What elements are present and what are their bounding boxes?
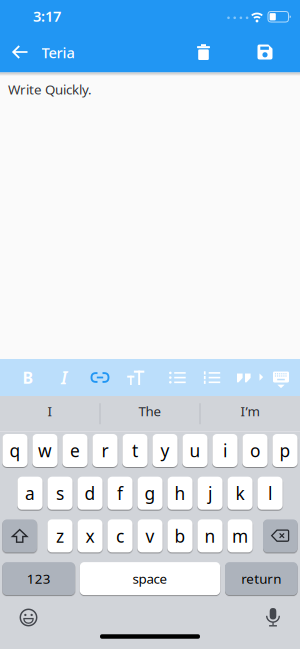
button[interactable]: l	[257, 477, 283, 510]
staticText: i	[223, 439, 227, 462]
button[interactable]: i	[212, 434, 238, 467]
staticText: 123	[27, 570, 51, 587]
button[interactable]: Italic	[50, 362, 78, 392]
button[interactable]: u	[182, 434, 208, 467]
button[interactable]: e	[62, 434, 88, 467]
button[interactable]: Quote	[232, 362, 256, 392]
button[interactable]: Dictate	[258, 602, 288, 632]
button[interactable]: Shift	[2, 519, 37, 552]
staticText: y	[160, 439, 169, 462]
staticText: q	[9, 439, 20, 462]
button[interactable]: z	[47, 519, 73, 552]
button[interactable]: c	[107, 519, 133, 552]
button[interactable]: Return	[225, 562, 298, 595]
staticText: I’m	[240, 402, 259, 420]
staticText: a	[25, 482, 35, 505]
staticText: v	[145, 524, 154, 547]
button[interactable]: t	[122, 434, 148, 467]
staticText: Teria	[41, 43, 74, 62]
staticText: x	[85, 524, 94, 547]
button[interactable]: y	[152, 434, 178, 467]
button[interactable]: I	[2, 396, 98, 426]
staticText: p	[279, 439, 290, 462]
button[interactable]: Delete	[188, 37, 218, 67]
staticText: k	[235, 482, 244, 505]
button[interactable]: s	[47, 477, 73, 510]
button[interactable]: w	[32, 434, 58, 467]
button[interactable]: x	[77, 519, 103, 552]
button[interactable]: r	[92, 434, 118, 467]
staticText: j	[208, 482, 212, 505]
staticText: e	[70, 439, 80, 462]
button[interactable]: Delete	[263, 519, 298, 552]
button[interactable]: j	[197, 477, 223, 510]
staticText: c	[116, 524, 124, 547]
staticText: I	[61, 366, 67, 389]
button[interactable]: a	[17, 477, 43, 510]
staticText: z	[56, 524, 64, 547]
staticText: b	[174, 524, 185, 547]
button[interactable]: Text size	[122, 362, 150, 392]
staticText: space	[132, 570, 167, 587]
button[interactable]: h	[167, 477, 193, 510]
staticText: d	[84, 482, 95, 505]
button[interactable]: Numbered list	[198, 362, 226, 392]
staticText: B	[22, 367, 33, 388]
staticText: s	[56, 482, 64, 505]
staticText: 3:17	[33, 6, 61, 26]
button[interactable]: Hide keyboard	[269, 363, 293, 393]
staticText: g	[144, 482, 155, 505]
staticText: r	[101, 439, 108, 462]
staticText: I	[47, 402, 52, 420]
button[interactable]: Bold	[14, 362, 42, 392]
button[interactable]: f	[107, 477, 133, 510]
button[interactable]: Back	[5, 37, 35, 67]
staticText: Write Quickly.	[8, 80, 92, 98]
button[interactable]: Save	[250, 37, 280, 67]
staticText: o	[250, 439, 260, 462]
staticText: w	[38, 439, 52, 462]
button[interactable]: k	[227, 477, 253, 510]
staticText: h	[174, 482, 185, 505]
staticText: return	[241, 570, 281, 587]
button[interactable]: b	[167, 519, 193, 552]
button[interactable]: q	[2, 434, 28, 467]
button[interactable]: n	[197, 519, 223, 552]
staticText: n	[204, 524, 215, 547]
staticText: u	[189, 439, 200, 462]
button[interactable]: m	[227, 519, 253, 552]
button[interactable]: I’m	[202, 396, 298, 426]
staticText: l	[268, 482, 272, 505]
button[interactable]: Numbers	[2, 562, 75, 595]
button[interactable]: p	[272, 434, 298, 467]
button[interactable]: Insert link	[86, 362, 114, 392]
button[interactable]: The	[102, 396, 198, 426]
button[interactable]: g	[137, 477, 163, 510]
staticText: t	[132, 439, 138, 462]
button[interactable]: o	[242, 434, 268, 467]
staticText: f	[117, 482, 123, 505]
button[interactable]: d	[77, 477, 103, 510]
button[interactable]: Emoji	[13, 602, 43, 632]
staticText: The	[138, 402, 161, 420]
button[interactable]: space	[80, 562, 220, 595]
button[interactable]: v	[137, 519, 163, 552]
staticText: m	[232, 524, 248, 547]
button[interactable]: Bulleted list	[163, 362, 191, 392]
